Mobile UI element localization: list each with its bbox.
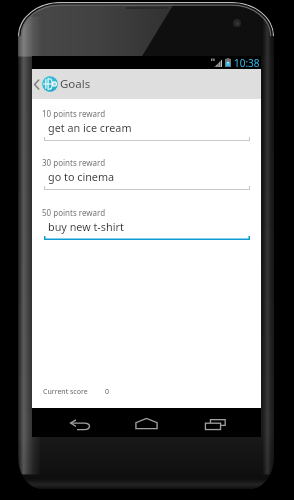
- button[interactable]: Back: [58, 410, 102, 439]
- staticText: 0: [105, 387, 110, 397]
- staticText: 50 points reward: [42, 207, 106, 218]
- staticText: 10:38: [234, 56, 260, 69]
- staticText: 30 points reward: [42, 157, 106, 168]
- button[interactable]: 50 points reward: [32, 211, 261, 255]
- button[interactable]: Recent apps: [193, 410, 237, 439]
- staticText: Goals: [60, 76, 91, 92]
- staticText: 10 points reward: [42, 108, 106, 119]
- button[interactable]: 10 points reward: [32, 112, 261, 156]
- button[interactable]: 30 points reward: [32, 161, 261, 205]
- button[interactable]: Navigate up: [32, 76, 60, 92]
- staticText: go to cinema: [48, 169, 115, 184]
- staticText: Current score: [43, 387, 88, 397]
- staticText: buy new t-shirt: [48, 219, 124, 234]
- button[interactable]: Home: [124, 409, 169, 438]
- staticText: get an ice cream: [48, 120, 132, 135]
